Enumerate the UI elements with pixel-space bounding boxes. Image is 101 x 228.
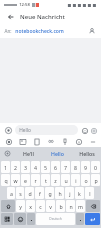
button[interactable]: 5 xyxy=(41,161,50,173)
button[interactable]: Emoji xyxy=(14,213,26,225)
button[interactable]: 9 xyxy=(81,161,90,173)
button[interactable]: Deutsch xyxy=(36,213,75,225)
button[interactable]: 6 xyxy=(51,161,60,173)
button[interactable]: 8 xyxy=(71,161,80,173)
button[interactable]: Settings xyxy=(0,147,14,160)
staticText: 6 xyxy=(54,164,57,171)
button[interactable]: w xyxy=(11,174,20,186)
button[interactable]: j xyxy=(65,187,74,199)
staticText: j xyxy=(69,190,71,197)
button[interactable]: Hellos xyxy=(72,147,101,160)
button[interactable]: n xyxy=(66,200,75,212)
staticText: t xyxy=(45,177,47,184)
button[interactable]: t xyxy=(41,174,50,186)
button[interactable]: 1 xyxy=(1,161,10,173)
button[interactable]: a xyxy=(7,187,15,199)
staticText: An: xyxy=(4,28,12,34)
button[interactable]: Theme xyxy=(4,137,13,146)
button[interactable]: Enter xyxy=(85,213,100,225)
button[interactable]: Shift xyxy=(1,200,15,212)
staticText: n xyxy=(69,203,73,210)
button[interactable]: 2 xyxy=(11,161,20,173)
button[interactable]: c xyxy=(36,200,45,212)
button[interactable]: Send xyxy=(89,126,98,135)
staticText: w xyxy=(13,177,18,184)
button[interactable]: o xyxy=(81,174,90,186)
button[interactable]: k xyxy=(75,187,84,199)
staticText: q xyxy=(4,177,8,184)
staticText: m xyxy=(78,203,83,210)
button[interactable]: Symbols xyxy=(1,213,13,225)
staticText: notebookcheck.com xyxy=(15,28,64,35)
button[interactable]: v xyxy=(46,200,55,212)
button[interactable]: q xyxy=(1,174,10,186)
button[interactable]: p xyxy=(91,174,100,186)
button[interactable]: 7 xyxy=(61,161,70,173)
staticText: b xyxy=(59,203,63,210)
button[interactable]: 3 xyxy=(21,161,30,173)
staticText: 3 xyxy=(24,164,27,171)
button[interactable]: 4 xyxy=(31,161,40,173)
button[interactable]: y xyxy=(16,200,25,212)
button[interactable]: e xyxy=(21,174,30,186)
button[interactable]: Contact xyxy=(46,137,55,146)
button[interactable]: x xyxy=(26,200,35,212)
staticText: i xyxy=(75,177,77,184)
button[interactable]: Camera xyxy=(32,137,41,146)
staticText: h xyxy=(58,190,62,197)
staticText: y xyxy=(19,203,22,210)
button[interactable]: z xyxy=(51,174,60,186)
staticText: p xyxy=(94,177,98,184)
button[interactable]: Gallery xyxy=(18,137,27,146)
button[interactable]: An: xyxy=(4,23,97,38)
button[interactable]: Period xyxy=(76,213,84,225)
staticText: z xyxy=(54,177,57,184)
button[interactable]: Add contact xyxy=(87,26,97,36)
staticText: a xyxy=(10,190,13,197)
button[interactable]: Info xyxy=(74,137,83,146)
button[interactable]: Comma xyxy=(27,213,35,225)
staticText: x xyxy=(29,203,32,210)
staticText: Hello xyxy=(51,150,64,157)
button[interactable]: h xyxy=(55,187,64,199)
button[interactable]: d xyxy=(25,187,34,199)
staticText: s xyxy=(19,190,22,197)
button[interactable]: Hello xyxy=(43,147,72,160)
button[interactable]: Emoji xyxy=(80,126,89,135)
button[interactable]: m xyxy=(76,200,85,212)
staticText: 5 xyxy=(44,164,47,171)
staticText: 7 xyxy=(64,164,67,171)
button[interactable]: f xyxy=(35,187,44,199)
button[interactable]: More xyxy=(88,137,97,146)
staticText: e xyxy=(24,177,27,184)
staticText: 2 xyxy=(14,164,17,171)
button[interactable]: Sticker xyxy=(3,125,13,135)
staticText: 12:58 xyxy=(19,2,30,8)
button[interactable]: i xyxy=(71,174,80,186)
button[interactable]: 0 xyxy=(91,161,100,173)
staticText: k xyxy=(78,190,81,197)
button[interactable]: s xyxy=(16,187,24,199)
staticText: 9 xyxy=(84,164,87,171)
staticText: v xyxy=(49,203,52,210)
button[interactable]: r xyxy=(31,174,40,186)
staticText: 8 xyxy=(74,164,77,171)
staticText: g xyxy=(48,190,52,197)
button[interactable]: u xyxy=(61,174,70,186)
button[interactable]: l xyxy=(85,187,94,199)
staticText: o xyxy=(84,177,88,184)
staticText: Hellos xyxy=(79,150,95,157)
button[interactable]: Back xyxy=(5,11,16,22)
button[interactable]: b xyxy=(56,200,65,212)
staticText: Neue Nachricht xyxy=(20,13,65,21)
button[interactable]: Hello xyxy=(19,125,74,135)
staticText: He'll xyxy=(23,150,34,157)
staticText: d xyxy=(28,190,32,197)
button[interactable]: Voice xyxy=(60,137,69,146)
button[interactable]: Backspace xyxy=(86,200,100,212)
staticText: u xyxy=(64,177,68,184)
staticText: 1 xyxy=(4,164,7,171)
staticText: 4 xyxy=(34,164,37,171)
button[interactable]: g xyxy=(45,187,54,199)
button[interactable]: He'll xyxy=(14,147,43,160)
